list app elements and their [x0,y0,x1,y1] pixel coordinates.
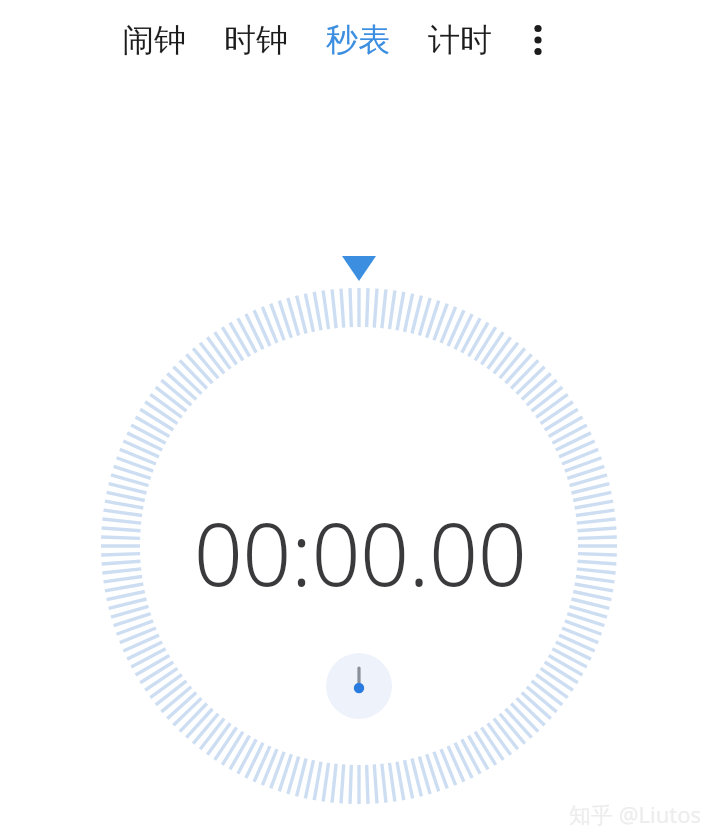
staticText: 知乎 @Liutos [569,799,702,829]
button[interactable]: Lap [326,653,392,719]
button[interactable]: 秒表 [322,0,394,80]
button[interactable]: 计时 [424,0,496,80]
staticText: 00:00.00 [0,494,720,611]
staticText: 秒表 [326,20,390,60]
staticText: 闹钟 [122,20,186,60]
staticText: 时钟 [224,20,288,60]
button[interactable]: More options [510,0,566,80]
button[interactable]: 时钟 [220,0,292,80]
staticText: 计时 [428,20,492,60]
button[interactable]: 闹钟 [118,0,190,80]
